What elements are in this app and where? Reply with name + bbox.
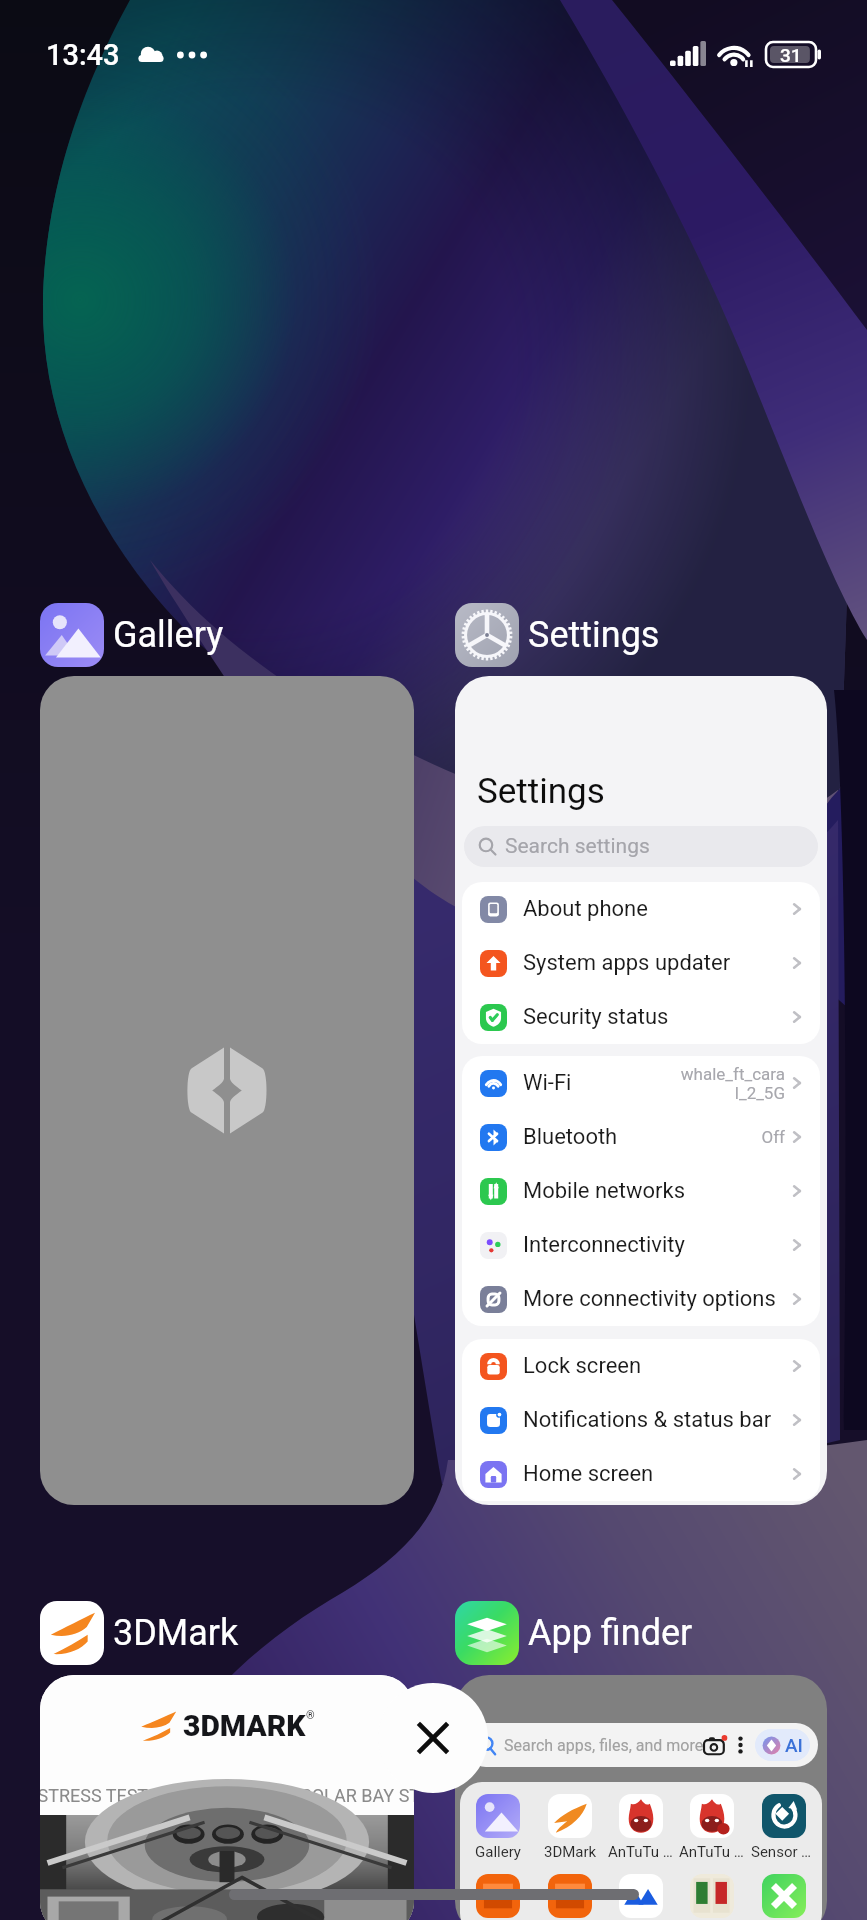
- button[interactable]: TREME STRESS TEST: [40, 1785, 149, 1806]
- button[interactable]: [40, 676, 414, 1505]
- staticText: Lock screen: [523, 1353, 642, 1379]
- button[interactable]: 3DMark: [537, 1794, 603, 1861]
- button[interactable]: About phone: [462, 882, 820, 936]
- button[interactable]: SOLAR BAY: [177, 1785, 273, 1806]
- staticText: Gallery: [475, 1843, 521, 1861]
- button[interactable]: [537, 1874, 603, 1918]
- button[interactable]: Settings: [455, 676, 827, 1505]
- staticText: Gallery: [113, 614, 224, 656]
- staticText: App finder: [528, 1612, 693, 1654]
- staticText: About phone: [523, 896, 648, 922]
- staticText: Settings: [528, 614, 660, 656]
- staticText: ®: [306, 1709, 315, 1722]
- staticText: Off: [677, 1127, 785, 1147]
- button[interactable]: More connectivity options: [462, 1272, 820, 1326]
- button[interactable]: Security status: [462, 990, 820, 1044]
- button[interactable]: System apps updater: [462, 936, 820, 990]
- button[interactable]: Lock screen: [462, 1339, 820, 1393]
- staticText: Home screen: [523, 1461, 654, 1487]
- button[interactable]: Gallery: [40, 600, 224, 670]
- button[interactable]: Search apps, files, and more: [464, 1723, 818, 1767]
- staticText: Wi-Fi: [523, 1070, 572, 1096]
- staticText: Mobile networks: [523, 1178, 685, 1204]
- staticText: Notifications & status bar: [523, 1407, 772, 1433]
- button[interactable]: Notifications & status bar: [462, 1393, 820, 1447]
- button[interactable]: Close: [378, 1683, 488, 1793]
- button[interactable]: AnTuTu ...: [608, 1794, 674, 1861]
- button[interactable]: [608, 1874, 674, 1918]
- button[interactable]: Wi-Fi: [462, 1056, 820, 1110]
- button[interactable]: App finder: [455, 1598, 693, 1668]
- staticText: Search apps, files, and more: [504, 1736, 704, 1755]
- button[interactable]: [751, 1874, 817, 1918]
- button[interactable]: 3DMARK: [40, 1675, 414, 1920]
- button[interactable]: Bluetooth: [462, 1110, 820, 1164]
- staticText: Search settings: [505, 834, 650, 859]
- staticText: AI: [785, 1734, 803, 1756]
- staticText: 3DMark: [544, 1843, 597, 1861]
- staticText: Bluetooth: [523, 1124, 618, 1150]
- staticText: Security status: [523, 1004, 669, 1030]
- button[interactable]: Home screen: [462, 1447, 820, 1501]
- button[interactable]: SOLAR BAY STRESS: [301, 1785, 414, 1806]
- staticText: More connectivity options: [523, 1286, 776, 1312]
- staticText: 13:43: [46, 38, 120, 72]
- button[interactable]: Gallery: [465, 1794, 531, 1861]
- button[interactable]: Interconnectivity: [462, 1218, 820, 1272]
- button[interactable]: Search settings: [464, 826, 818, 867]
- button[interactable]: Sensor T...: [751, 1794, 817, 1861]
- staticText: System apps updater: [523, 950, 731, 976]
- button[interactable]: AI: [762, 1729, 803, 1761]
- button[interactable]: [465, 1874, 531, 1918]
- staticText: 3DMARK: [183, 1708, 306, 1743]
- staticText: AnTuTu ...: [608, 1843, 674, 1861]
- staticText: Interconnectivity: [523, 1232, 685, 1258]
- staticText: 31: [780, 44, 802, 66]
- button[interactable]: Search apps, files, and more: [455, 1675, 827, 1920]
- staticText: Settings: [477, 771, 605, 812]
- staticText: whale_ft_caral_2_5G: [677, 1064, 785, 1103]
- staticText: Sensor T...: [751, 1843, 817, 1861]
- button[interactable]: Settings: [455, 600, 660, 670]
- button[interactable]: 3DMark: [40, 1598, 239, 1668]
- staticText: AnTuTu ...: [679, 1843, 745, 1861]
- button[interactable]: AnTuTu ...: [679, 1794, 745, 1861]
- button[interactable]: [679, 1874, 745, 1918]
- button[interactable]: Mobile networks: [462, 1164, 820, 1218]
- staticText: 3DMark: [113, 1612, 239, 1654]
